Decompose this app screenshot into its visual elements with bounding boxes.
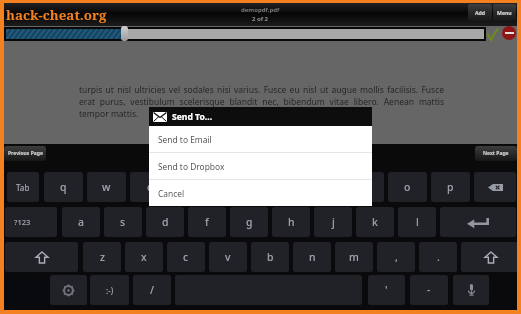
button[interactable]: Next Page xyxy=(475,146,517,161)
button[interactable]: Menu xyxy=(493,4,516,21)
button[interactable]: Accept xyxy=(487,28,498,41)
staticText: v xyxy=(225,250,231,264)
button[interactable]: ?123 xyxy=(5,207,57,237)
button[interactable]: Shift xyxy=(5,242,78,272)
button[interactable]: z xyxy=(83,242,121,272)
staticText: , xyxy=(395,250,398,264)
button[interactable]: Voice input xyxy=(453,275,489,305)
button[interactable]: Add xyxy=(468,4,492,21)
staticText: w xyxy=(102,180,111,194)
staticText: 2 of 2 xyxy=(252,15,269,23)
staticText: j xyxy=(332,215,335,229)
button[interactable]: y xyxy=(259,172,298,202)
button[interactable]: q xyxy=(44,172,83,202)
button[interactable]: a xyxy=(62,207,100,237)
staticText: a xyxy=(78,215,84,229)
button[interactable]: Cancel xyxy=(502,26,516,40)
button[interactable]: f xyxy=(188,207,226,237)
button[interactable]: Cancel xyxy=(149,180,372,206)
staticText: z xyxy=(100,250,105,264)
button[interactable]: u xyxy=(302,172,341,202)
button[interactable]: t xyxy=(216,172,255,202)
staticText: s xyxy=(120,215,126,229)
button[interactable]: j xyxy=(314,207,352,237)
staticText: Send To... xyxy=(172,111,213,123)
button[interactable]: l xyxy=(398,207,436,237)
staticText: e xyxy=(147,180,153,194)
staticText: q xyxy=(60,180,67,194)
button[interactable]: s xyxy=(104,207,142,237)
button[interactable]: c xyxy=(167,242,205,272)
staticText: Next Page xyxy=(483,150,509,157)
staticText: Tab xyxy=(16,182,30,193)
button[interactable]: b xyxy=(251,242,289,272)
staticText: Menu xyxy=(497,9,512,16)
button[interactable]: h xyxy=(272,207,310,237)
staticText: l xyxy=(416,215,419,229)
button[interactable]: Previous Page xyxy=(4,146,46,161)
staticText: hack-cheat.org xyxy=(6,6,107,24)
button[interactable]: :-) xyxy=(90,275,129,305)
button[interactable]: Settings xyxy=(50,275,87,305)
staticText: g xyxy=(246,215,253,229)
button[interactable]: n xyxy=(293,242,331,272)
button[interactable]: . xyxy=(419,242,457,272)
staticText: n xyxy=(309,250,316,264)
staticText: m xyxy=(349,250,359,264)
staticText: ' xyxy=(385,283,388,297)
staticText: - xyxy=(427,283,431,297)
button[interactable]: w xyxy=(87,172,126,202)
button[interactable]: p xyxy=(431,172,470,202)
staticText: b xyxy=(267,250,274,264)
button[interactable]: v xyxy=(209,242,247,272)
button[interactable]: Shift xyxy=(461,242,520,272)
button[interactable]: Send to Dropbox xyxy=(149,153,372,179)
staticText: k xyxy=(372,215,378,229)
button[interactable]: - xyxy=(410,275,448,305)
button[interactable]: e xyxy=(130,172,169,202)
staticText: :-) xyxy=(106,285,114,296)
staticText: x xyxy=(141,250,147,264)
staticText: . xyxy=(437,250,440,264)
button[interactable]: k xyxy=(356,207,394,237)
staticText: f xyxy=(205,215,209,229)
staticText: h xyxy=(288,215,295,229)
button[interactable]: x xyxy=(125,242,163,272)
staticText: Send to Dropbox xyxy=(158,161,225,172)
button[interactable]: g xyxy=(230,207,268,237)
button[interactable]: Seek xyxy=(121,26,128,41)
staticText: Send to Email xyxy=(158,134,212,145)
button[interactable]: Backspace xyxy=(474,172,516,202)
staticText: c xyxy=(183,250,189,264)
button[interactable]: Tab xyxy=(7,172,39,202)
button[interactable]: o xyxy=(388,172,427,202)
staticText: o xyxy=(404,180,411,194)
staticText: Previous Page xyxy=(8,150,43,157)
button[interactable]: , xyxy=(377,242,415,272)
button[interactable]: ' xyxy=(368,275,405,305)
staticText: Add xyxy=(475,9,486,16)
button[interactable]: m xyxy=(335,242,373,272)
staticText: turpis ut nisl ultricies vel sodales nis… xyxy=(79,84,444,120)
staticText: d xyxy=(162,215,169,229)
staticText: / xyxy=(150,283,155,297)
button[interactable]: r xyxy=(173,172,212,202)
button[interactable]: Enter xyxy=(440,207,516,237)
button[interactable]: Send To... xyxy=(153,107,372,126)
button[interactable]: Send to Email xyxy=(149,126,372,152)
staticText: Cancel xyxy=(158,188,185,199)
staticText: demopdf.pdf xyxy=(241,6,280,14)
staticText: ?123 xyxy=(14,217,31,227)
button[interactable]: i xyxy=(345,172,384,202)
button[interactable]: d xyxy=(146,207,184,237)
button[interactable]: / xyxy=(133,275,171,305)
staticText: p xyxy=(447,180,454,194)
